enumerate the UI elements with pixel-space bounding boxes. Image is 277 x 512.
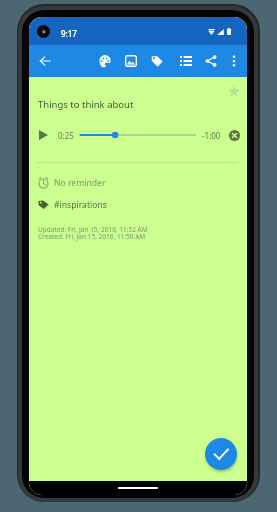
button[interactable]: Add image <box>120 50 142 72</box>
staticText: -1:00 <box>202 130 221 141</box>
staticText: Things to think about <box>38 98 134 111</box>
button[interactable]: Change colour <box>94 50 116 72</box>
staticText: Created: Fri, Jan 15, 2016, 11:50 AM <box>38 232 146 241</box>
button[interactable]: Save note <box>205 438 237 470</box>
staticText: 0:25 <box>58 130 74 141</box>
button[interactable]: Labels <box>146 50 168 72</box>
button[interactable]: Play recording <box>30 122 56 148</box>
button[interactable]: Seek <box>75 125 201 145</box>
staticText: Updated: Fri, Jan 15, 2016, 11:52 AM <box>38 225 148 234</box>
button[interactable]: #inspirations <box>34 194 113 215</box>
button[interactable]: More options <box>223 50 245 72</box>
button[interactable]: No reminder <box>34 172 112 193</box>
button[interactable]: Back <box>34 50 56 72</box>
button[interactable]: Checkboxes <box>175 50 197 72</box>
button[interactable]: Delete recording <box>223 124 245 146</box>
staticText: 9:17 <box>61 28 77 39</box>
staticText: #inspirations <box>54 199 107 211</box>
button[interactable]: Share <box>200 50 222 72</box>
staticText: No reminder <box>54 177 106 189</box>
button[interactable]: Pin note <box>222 79 245 102</box>
